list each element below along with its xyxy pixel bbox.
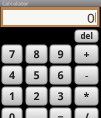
staticText: Calculator xyxy=(2,0,28,7)
button[interactable]: 2 xyxy=(26,87,47,105)
button[interactable]: * xyxy=(75,87,98,105)
staticText: 8 xyxy=(33,47,39,61)
button[interactable]: 5 xyxy=(26,66,47,84)
button[interactable]: . xyxy=(26,108,47,118)
button[interactable]: 6 xyxy=(50,66,71,84)
staticText: 7 xyxy=(9,47,15,61)
button[interactable]: 1 xyxy=(2,87,22,105)
staticText: del xyxy=(80,31,92,41)
staticText: 5 xyxy=(33,68,39,82)
button[interactable]: - xyxy=(75,66,98,84)
staticText: . xyxy=(35,110,38,118)
button[interactable]: / xyxy=(75,108,98,118)
button[interactable]: 4 xyxy=(2,66,22,84)
staticText: 9 xyxy=(57,47,63,61)
button[interactable]: 0 xyxy=(2,108,22,118)
button[interactable]: + xyxy=(75,45,98,63)
button[interactable]: = xyxy=(50,108,71,118)
button[interactable]: 8 xyxy=(26,45,47,63)
staticText: / xyxy=(84,110,88,118)
staticText: 6 xyxy=(57,68,63,82)
staticText: * xyxy=(83,89,89,103)
button[interactable]: 9 xyxy=(50,45,71,63)
staticText: 2 xyxy=(33,89,39,103)
button[interactable]: del xyxy=(75,30,98,42)
staticText: 0 xyxy=(9,110,15,118)
staticText: 0 xyxy=(87,9,95,26)
button[interactable]: 3 xyxy=(50,87,71,105)
staticText: - xyxy=(85,68,88,82)
staticText: 3 xyxy=(57,89,63,103)
button[interactable]: 7 xyxy=(2,45,22,63)
staticText: 1 xyxy=(9,89,15,103)
staticText: = xyxy=(57,110,63,118)
staticText: + xyxy=(83,47,89,61)
staticText: 4 xyxy=(9,68,15,82)
